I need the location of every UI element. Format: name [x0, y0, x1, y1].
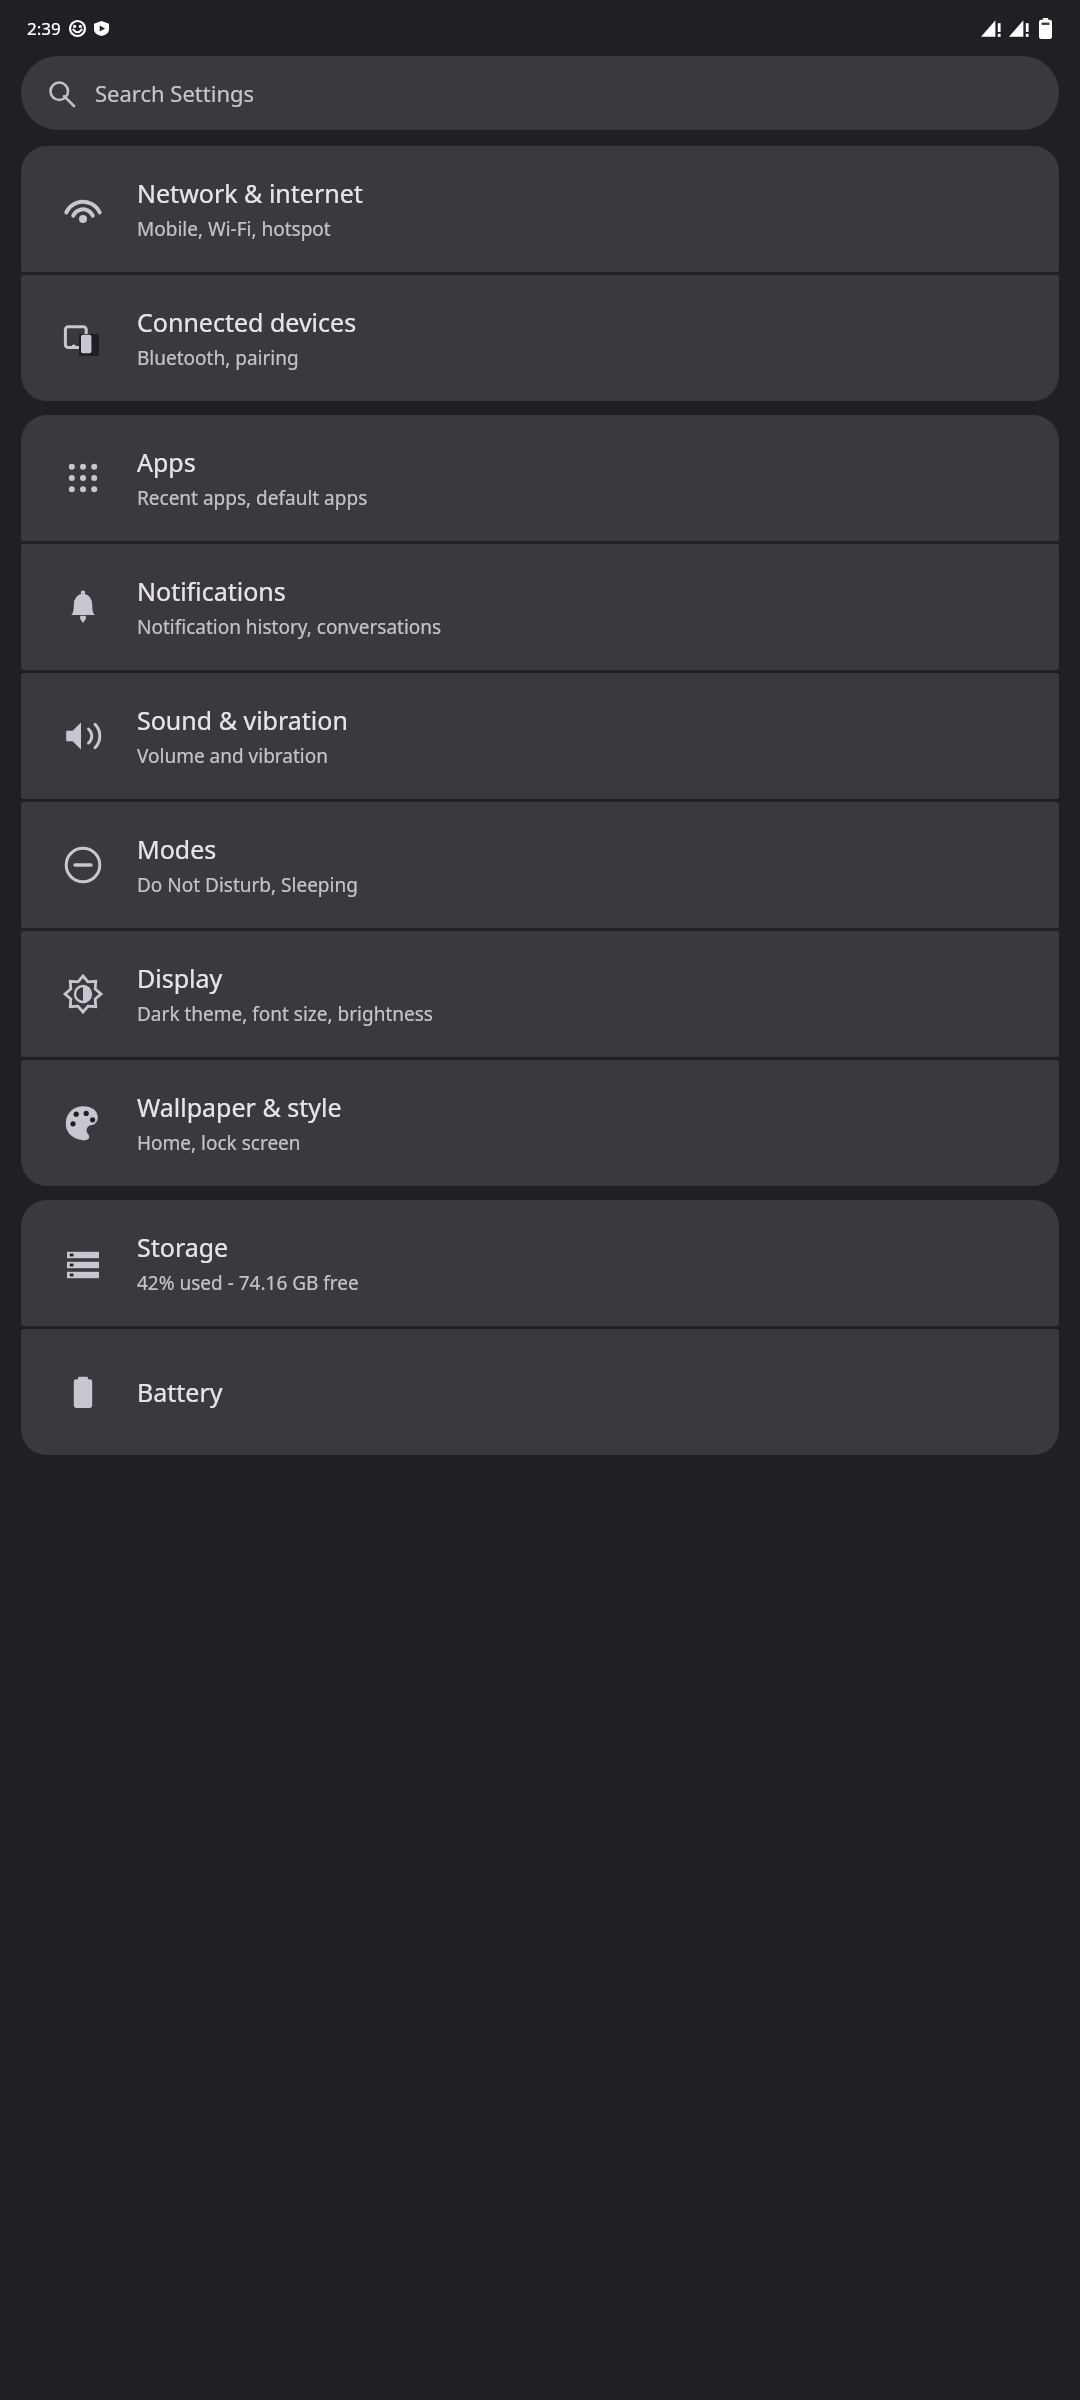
staticText: Sound & vibration — [137, 703, 348, 737]
staticText: Display — [137, 961, 223, 995]
button[interactable]: Storage — [21, 1200, 1059, 1326]
staticText: Notification history, conversations — [137, 614, 442, 640]
staticText: Dark theme, font size, brightness — [137, 1001, 433, 1027]
button[interactable]: Battery — [21, 1329, 1059, 1455]
button[interactable]: Apps — [21, 415, 1059, 541]
button[interactable]: Modes — [21, 802, 1059, 928]
staticText: Modes — [137, 832, 217, 866]
staticText: Wallpaper & style — [137, 1090, 342, 1124]
button[interactable]: Notifications — [21, 544, 1059, 670]
staticText: Apps — [137, 445, 196, 479]
staticText: Storage — [137, 1230, 229, 1264]
staticText: 42% used - 74.16 GB free — [137, 1270, 359, 1296]
button[interactable]: Connected devices — [21, 275, 1059, 401]
button[interactable]: Network & internet — [21, 146, 1059, 272]
staticText: Home, lock screen — [137, 1130, 301, 1156]
staticText: Notifications — [137, 574, 286, 608]
staticText: Volume and vibration — [137, 743, 328, 769]
button[interactable]: Sound & vibration — [21, 673, 1059, 799]
staticText: Do Not Disturb, Sleeping — [137, 872, 358, 898]
button[interactable]: Wallpaper & style — [21, 1060, 1059, 1186]
staticText: Network & internet — [137, 176, 363, 210]
staticText: 2:39 — [27, 17, 61, 40]
staticText: Recent apps, default apps — [137, 485, 368, 511]
staticText: Search Settings — [95, 78, 255, 108]
button[interactable]: Search Settings — [21, 56, 1059, 130]
staticText: Bluetooth, pairing — [137, 345, 299, 371]
staticText: Connected devices — [137, 305, 357, 339]
staticText: Mobile, Wi-Fi, hotspot — [137, 216, 331, 242]
staticText: Battery — [137, 1375, 223, 1409]
button[interactable]: Display — [21, 931, 1059, 1057]
